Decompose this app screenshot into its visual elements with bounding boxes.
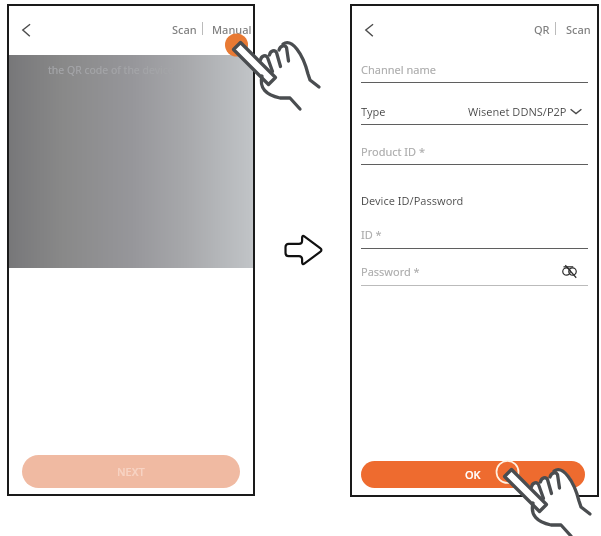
staticText: the QR code of the device.	[48, 63, 177, 77]
staticText: Password *	[361, 264, 420, 279]
button[interactable]: Type	[361, 100, 588, 128]
button[interactable]: Channel name	[361, 58, 588, 86]
button[interactable]: QR	[528, 18, 556, 41]
staticText: QR	[534, 22, 550, 37]
button[interactable]: NEXT	[22, 455, 240, 488]
button[interactable]: Product ID *	[361, 140, 588, 168]
button[interactable]: Scan	[560, 18, 597, 41]
staticText: Product ID *	[361, 144, 425, 159]
staticText: Scan	[566, 22, 591, 37]
button[interactable]: ID *	[361, 223, 588, 252]
button[interactable]: OK	[361, 461, 585, 488]
staticText: Scan	[172, 22, 197, 37]
button[interactable]: Scan	[166, 18, 203, 41]
button[interactable]: Back	[358, 17, 384, 43]
staticText: Wisenet DDNS/P2P	[468, 104, 567, 119]
button[interactable]: Manual	[206, 18, 258, 41]
staticText: Device ID/Password	[361, 193, 464, 208]
staticText: Type	[361, 104, 386, 119]
staticText: ID *	[361, 227, 382, 242]
staticText: NEXT	[117, 464, 145, 479]
staticText: OK	[465, 467, 481, 482]
staticText: Channel name	[361, 62, 436, 77]
staticText: Manual	[212, 22, 252, 37]
button[interactable]: Back	[15, 17, 41, 43]
button[interactable]: Password *	[361, 260, 588, 289]
